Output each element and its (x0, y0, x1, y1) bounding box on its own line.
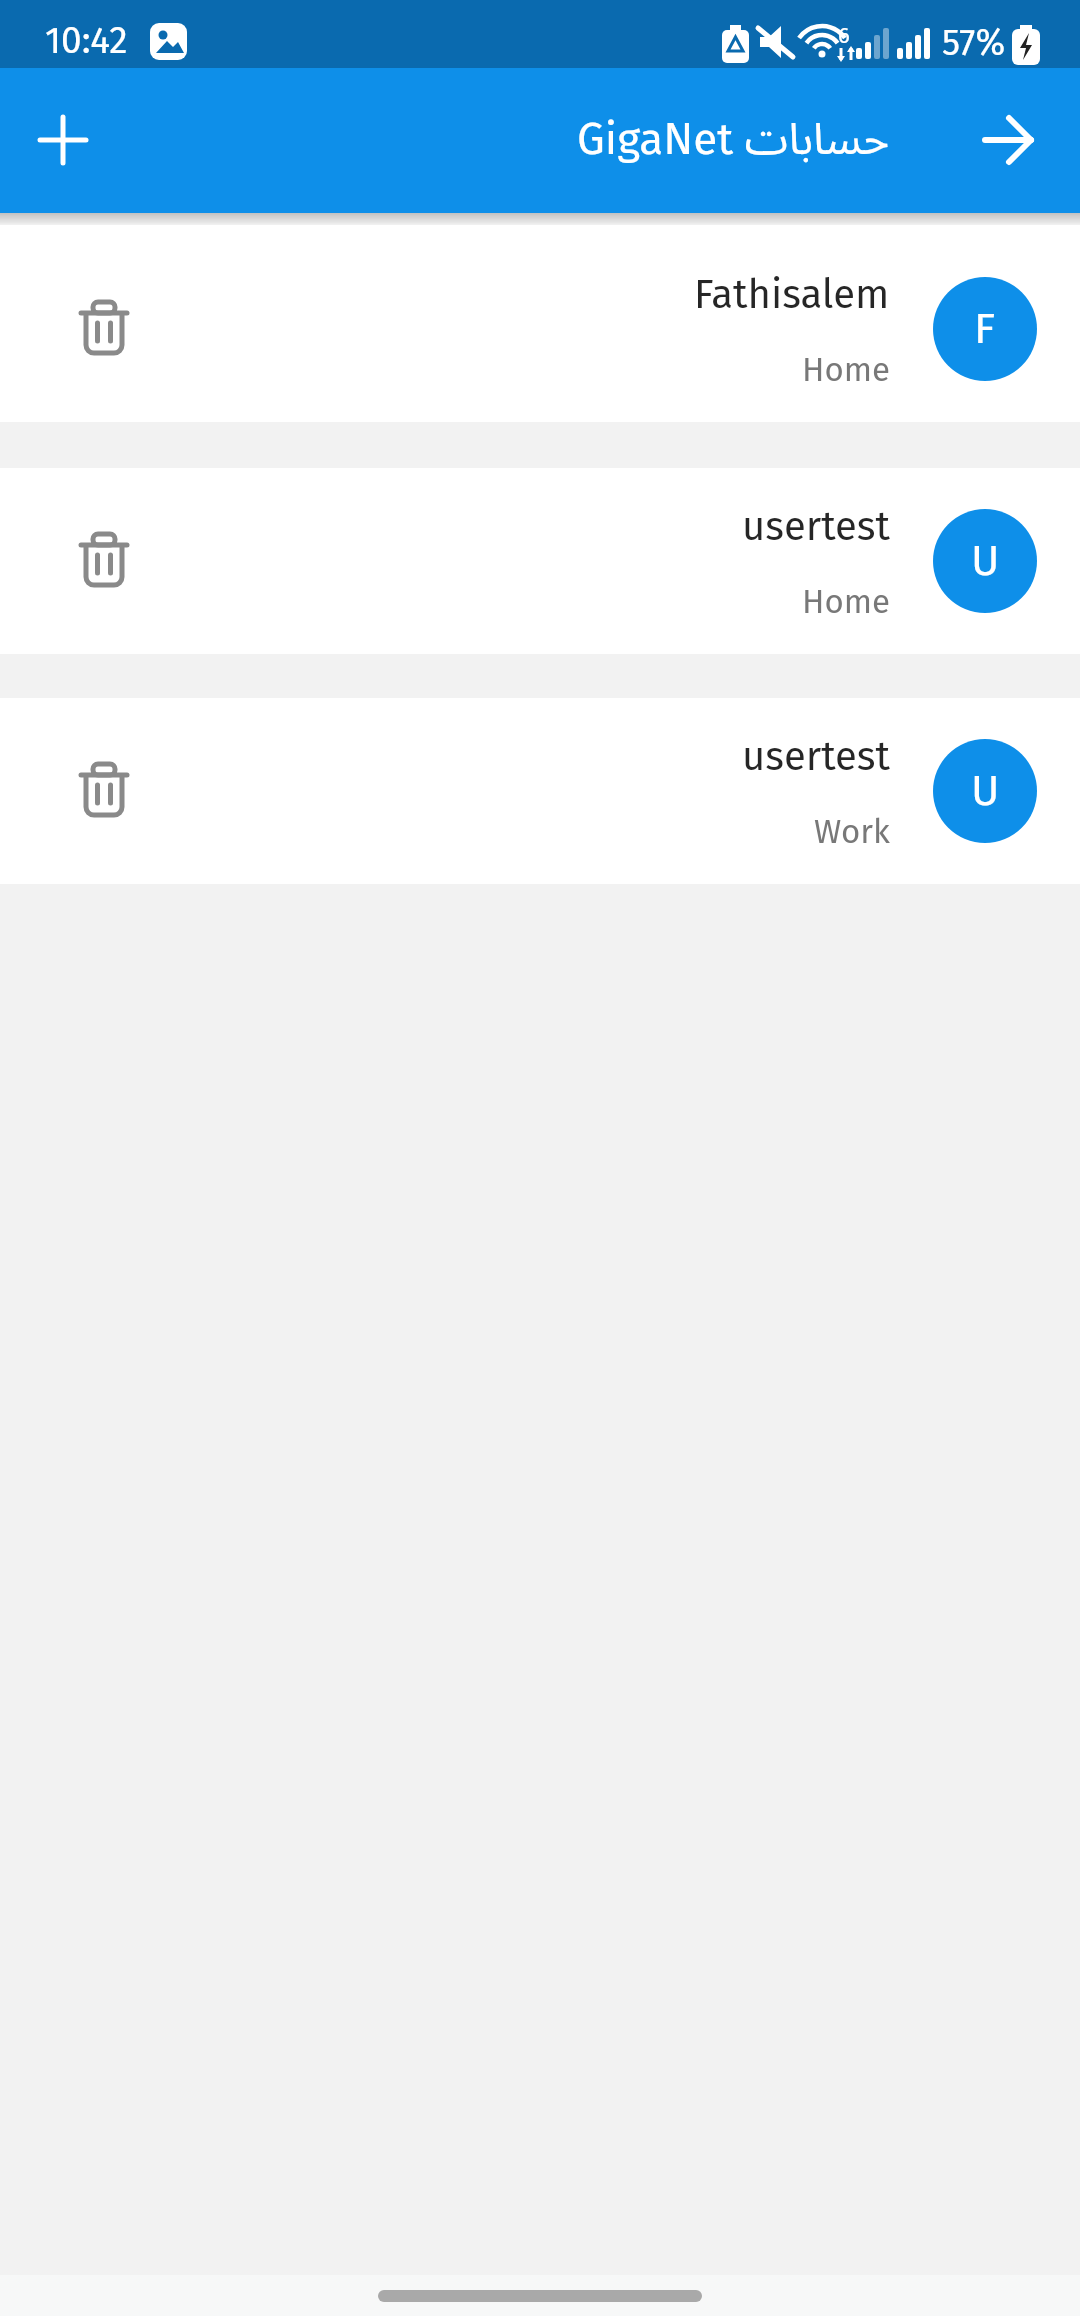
staticText: F (974, 303, 996, 355)
staticText: 57% (942, 21, 1006, 64)
staticText: 10:42 (45, 18, 128, 62)
staticText: 6 (838, 22, 850, 48)
staticText: usertest (742, 503, 890, 551)
staticText: Home (802, 582, 890, 622)
staticText: U (971, 535, 1000, 587)
staticText: GigaNet حسابات (577, 94, 890, 187)
staticText: usertest (742, 733, 890, 781)
staticText: Home (802, 350, 890, 390)
staticText: Fathisalem (694, 271, 890, 319)
staticText: Work (814, 812, 890, 852)
staticText: U (971, 765, 1000, 817)
